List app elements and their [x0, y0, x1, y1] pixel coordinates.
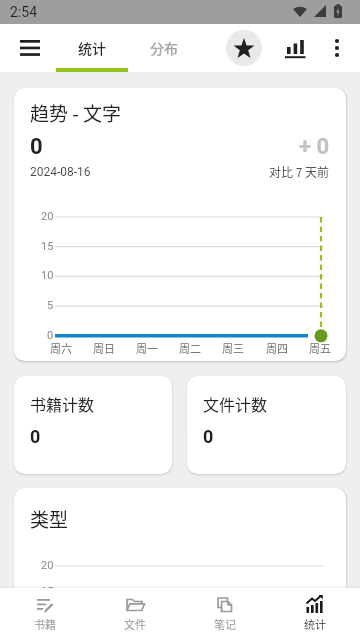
button[interactable]: [280, 32, 312, 64]
staticText: 周五: [309, 340, 331, 356]
staticText: 2024-08-16: [30, 165, 91, 179]
staticText: 书籍计数: [30, 392, 95, 415]
staticText: 周三: [222, 340, 244, 356]
staticText: 文件: [124, 616, 146, 632]
button[interactable]: 书籍: [0, 588, 90, 640]
staticText: 周日: [93, 340, 115, 356]
staticText: 周四: [266, 340, 288, 356]
staticText: 分布: [150, 38, 178, 58]
button[interactable]: 统计: [56, 24, 128, 72]
staticText: 统计: [304, 616, 326, 632]
button[interactable]: 书籍计数: [14, 376, 172, 474]
staticText: 文件计数: [203, 392, 268, 415]
staticText: 趋势 - 文字: [30, 99, 122, 127]
staticText: 15: [41, 585, 54, 598]
staticText: 15: [41, 240, 54, 253]
button[interactable]: [12, 30, 48, 66]
staticText: 类型: [30, 505, 69, 533]
button[interactable]: 文件: [90, 588, 180, 640]
staticText: 5: [47, 299, 54, 312]
staticText: 对比 7 天前: [269, 163, 330, 180]
staticText: 周六: [50, 340, 72, 356]
staticText: 周二: [179, 340, 201, 356]
staticText: 笔记: [214, 616, 236, 632]
staticText: 0: [30, 134, 43, 160]
staticText: + 0: [299, 134, 330, 160]
button[interactable]: 文件计数: [187, 376, 346, 474]
button[interactable]: 统计: [270, 588, 360, 640]
staticText: 周一: [136, 340, 158, 356]
staticText: 20: [41, 210, 54, 223]
staticText: 10: [41, 269, 54, 282]
button[interactable]: 分布: [128, 24, 200, 72]
button[interactable]: [321, 32, 353, 64]
staticText: 20: [41, 559, 54, 572]
button[interactable]: [226, 30, 262, 66]
button[interactable]: 笔记: [180, 588, 270, 640]
staticText: 书籍: [34, 616, 56, 632]
staticText: 统计: [78, 38, 106, 58]
staticText: 0: [47, 329, 54, 342]
staticText: 2:54: [10, 4, 37, 20]
staticText: 0: [30, 426, 41, 447]
staticText: 0: [203, 426, 214, 447]
